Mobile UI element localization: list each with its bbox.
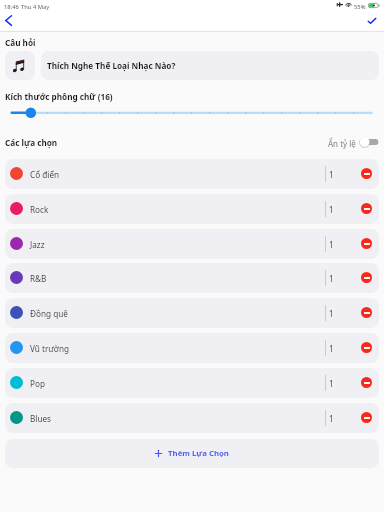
staticText: 1 bbox=[329, 308, 334, 319]
staticText: Pop bbox=[30, 378, 45, 389]
button[interactable]: Remove Blues bbox=[361, 412, 372, 423]
button[interactable]: Hide ratio bbox=[359, 136, 379, 148]
staticText: Thu 4 May bbox=[21, 3, 50, 11]
button[interactable]: Jazz bbox=[5, 229, 379, 259]
button[interactable]: Remove Pop bbox=[361, 377, 372, 388]
button[interactable]: Font size slider bbox=[0, 105, 384, 121]
button[interactable]: Rock bbox=[5, 194, 379, 224]
button[interactable]: Remove R&B bbox=[361, 272, 372, 283]
button[interactable]: Đồng quê bbox=[5, 298, 379, 328]
staticText: Câu hỏi bbox=[5, 37, 36, 48]
staticText: 1 bbox=[329, 378, 334, 389]
staticText: Thích Nghe Thế Loại Nhạc Nào? bbox=[47, 60, 176, 71]
staticText: 18:46 bbox=[4, 3, 19, 11]
staticText: 55% bbox=[354, 3, 366, 11]
button[interactable]: Vũ trường bbox=[5, 333, 379, 363]
staticText: R&B bbox=[30, 273, 47, 284]
staticText: Ẩn tỷ lệ bbox=[328, 138, 356, 149]
staticText: Thêm Lựa Chọn bbox=[168, 448, 229, 459]
staticText: Cổ điển bbox=[30, 169, 60, 180]
staticText: 1 bbox=[329, 343, 334, 354]
button[interactable]: Cổ điển bbox=[5, 159, 379, 189]
staticText: 1 bbox=[329, 273, 334, 284]
button[interactable]: Pop bbox=[5, 368, 379, 398]
staticText: 1 bbox=[329, 239, 334, 250]
staticText: 1 bbox=[329, 413, 334, 424]
button[interactable]: Remove Rock bbox=[361, 203, 372, 214]
button[interactable]: Back bbox=[0, 12, 24, 31]
staticText: 1 bbox=[329, 204, 334, 215]
staticText: Vũ trường bbox=[30, 343, 70, 354]
button[interactable]: Remove Jazz bbox=[361, 238, 372, 249]
button[interactable]: Remove Đồng quê bbox=[361, 307, 372, 318]
button[interactable]: Done bbox=[362, 12, 384, 31]
button[interactable]: Blues bbox=[5, 403, 379, 433]
button[interactable]: Remove Cổ điển bbox=[361, 168, 372, 179]
staticText: Blues bbox=[30, 413, 52, 424]
staticText: Kích thước phông chữ (16) bbox=[5, 91, 113, 102]
button[interactable]: Thêm Lựa Chọn bbox=[5, 439, 379, 468]
button[interactable]: R&B bbox=[5, 263, 379, 293]
staticText: Các lựa chọn bbox=[5, 137, 58, 148]
button[interactable]: Music emoji bbox=[5, 51, 35, 80]
button[interactable]: Thích Nghe Thế Loại Nhạc Nào? bbox=[41, 51, 379, 80]
button[interactable]: Remove Vũ trường bbox=[361, 342, 372, 353]
staticText: Jazz bbox=[30, 239, 45, 250]
staticText: Rock bbox=[30, 204, 49, 215]
staticText: Đồng quê bbox=[30, 308, 68, 319]
staticText: 1 bbox=[329, 169, 334, 180]
